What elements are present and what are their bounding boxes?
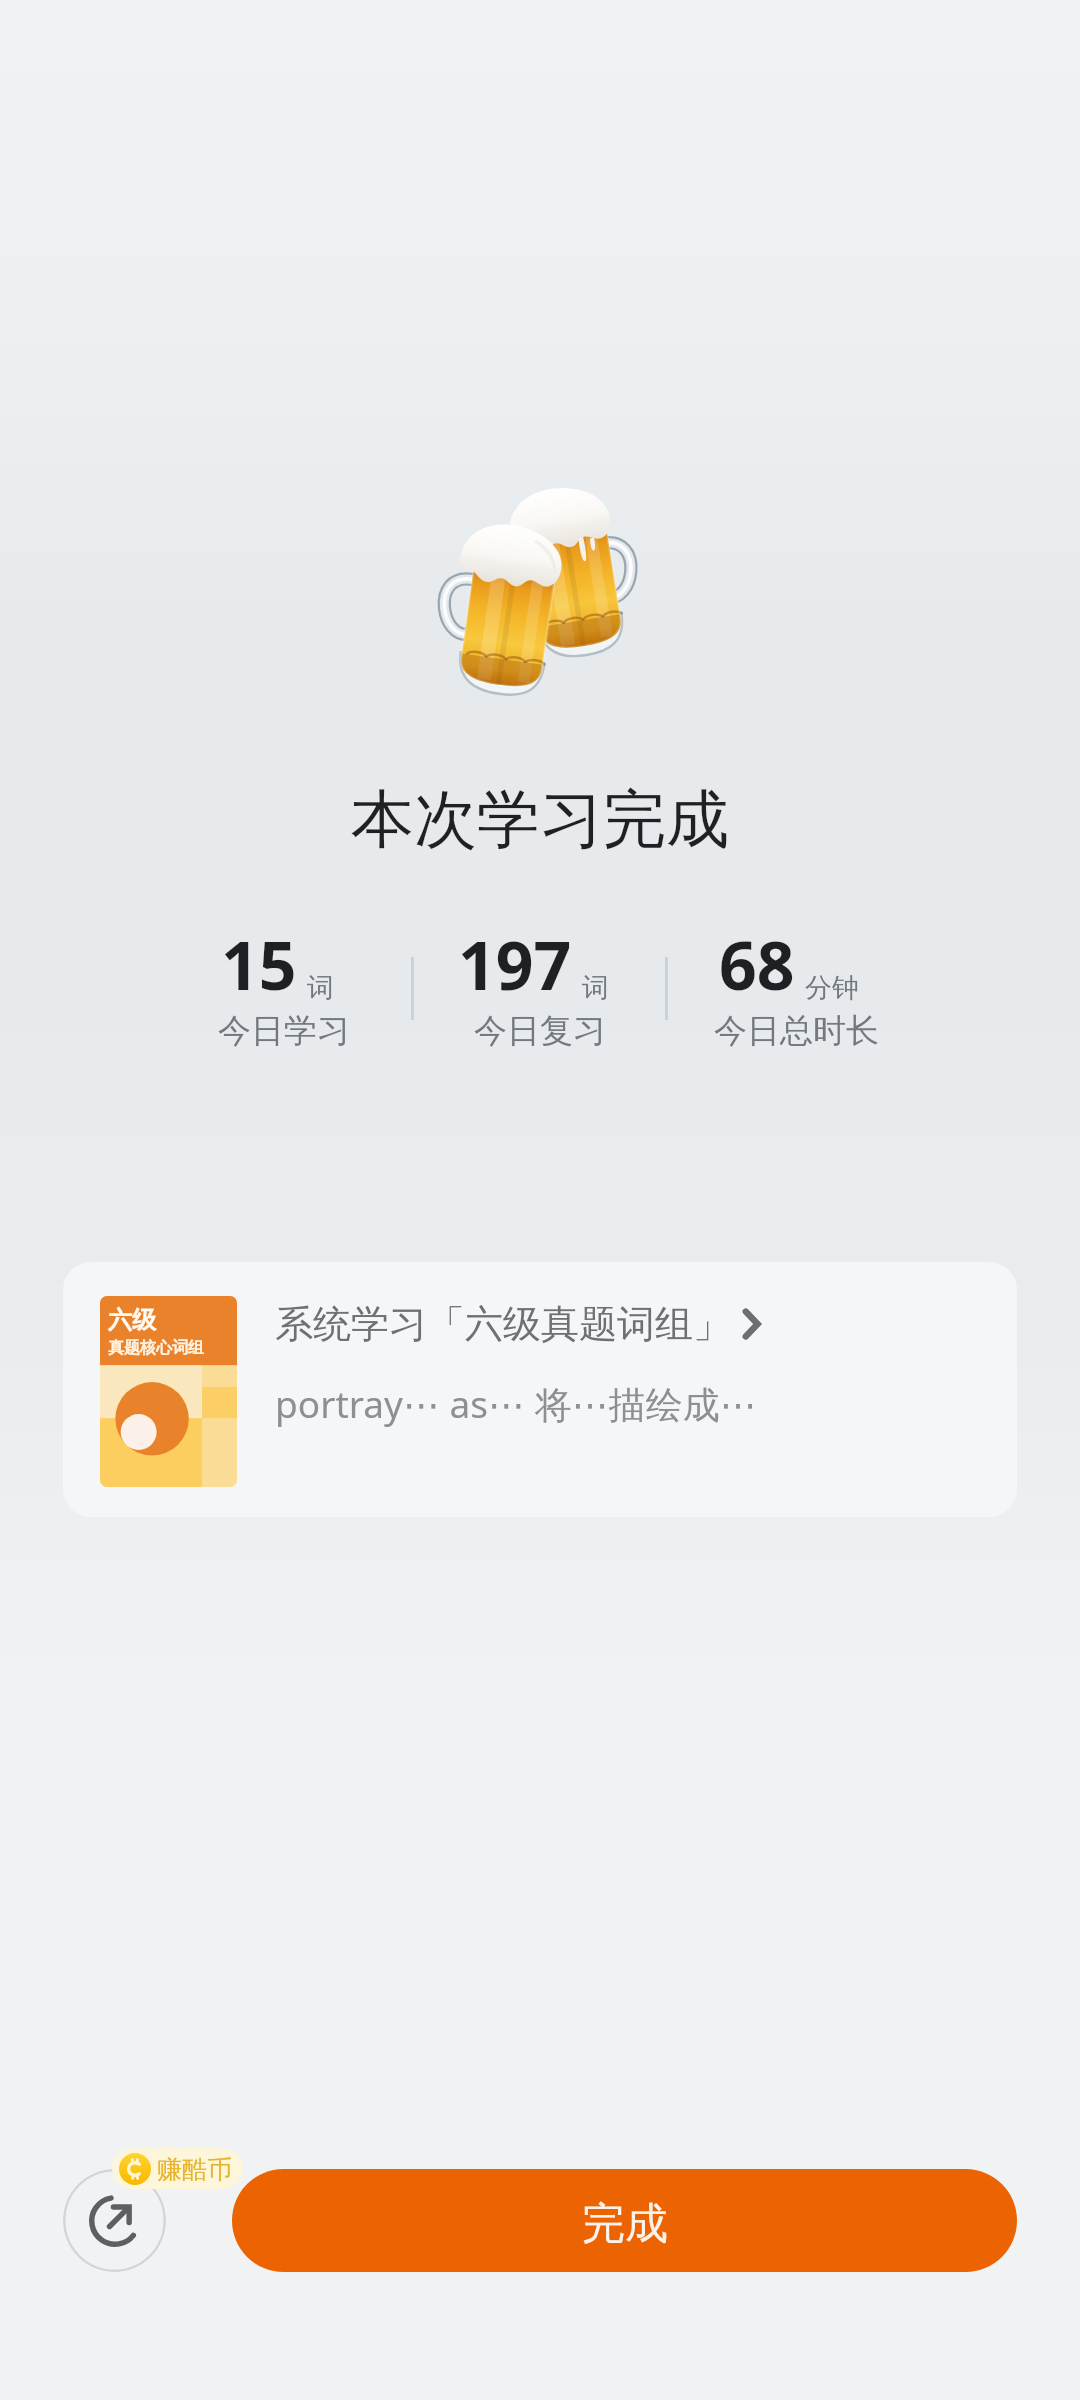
staticText: 197 [458,919,572,1009]
staticText: portray⋯ as⋯ 将⋯描绘成⋯ [275,1378,757,1429]
staticText: 词 [307,971,334,1005]
staticText: 今日学习 [218,1010,350,1052]
staticText: 系统学习「六级真题词组」 [275,1300,731,1348]
button[interactable]: 完成 [232,2169,1017,2272]
button[interactable]: 六级 [63,1262,1017,1517]
button[interactable]: 赚酷币 [112,2148,243,2189]
staticText: 真题核心词组 [108,1338,204,1358]
button[interactable]: Share [63,2169,166,2272]
staticText: 六级 [108,1305,156,1335]
staticText: 今日复习 [474,1010,606,1052]
staticText: 分钟 [805,971,859,1005]
staticText: 15 [221,919,297,1009]
staticText: 68 [719,919,795,1009]
staticText: 本次学习完成 [351,780,729,859]
staticText: 完成 [582,2197,668,2251]
staticText: 今日总时长 [714,1010,879,1052]
staticText: 赚酷币 [157,2154,232,2185]
staticText: 词 [582,971,609,1005]
